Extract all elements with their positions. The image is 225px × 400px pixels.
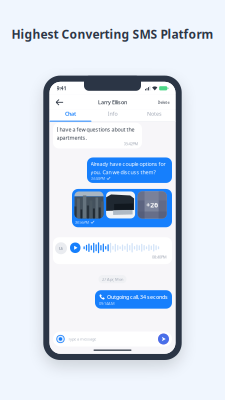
staticText: 09:14AM bbox=[99, 301, 115, 306]
staticText: Chat bbox=[65, 110, 76, 117]
staticText: 03:44PM bbox=[90, 176, 105, 181]
staticText: 03:42PM bbox=[123, 141, 138, 146]
staticText: Notes bbox=[147, 110, 162, 117]
staticText: 27 Apr, Mon bbox=[102, 276, 123, 282]
button[interactable]: Attach bbox=[56, 334, 65, 343]
staticText: Already have couple options for you. Can… bbox=[90, 160, 165, 176]
button[interactable]: Send bbox=[158, 333, 169, 344]
staticText: Highest Converting SMS Platform bbox=[11, 26, 213, 42]
staticText: Info bbox=[107, 110, 117, 117]
button[interactable]: Notes bbox=[133, 110, 175, 122]
staticText: Larry Ellison bbox=[98, 99, 127, 106]
staticText: 08:56PM bbox=[74, 219, 89, 225]
button[interactable]: Info bbox=[91, 110, 133, 122]
staticText: Type a message bbox=[68, 336, 96, 342]
staticText: 9:41 bbox=[56, 85, 66, 92]
button[interactable]: Back bbox=[55, 96, 69, 108]
button[interactable]: Delete bbox=[157, 96, 169, 108]
staticText: LE bbox=[59, 246, 63, 251]
staticText: +26 bbox=[146, 200, 158, 209]
button[interactable]: Chat bbox=[49, 110, 91, 122]
staticText: Delete bbox=[157, 100, 169, 105]
staticText: 08:40PM bbox=[152, 254, 167, 260]
staticText: Outgoing call, 34 seconds bbox=[107, 293, 168, 300]
staticText: I have a few questions about the apartme… bbox=[56, 126, 134, 141]
